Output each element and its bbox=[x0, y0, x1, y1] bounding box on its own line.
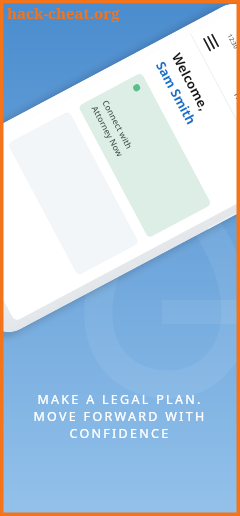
staticText: 12:30 bbox=[225, 33, 240, 51]
button[interactable]: Menu bbox=[198, 30, 223, 54]
staticText: CONFIDENCE bbox=[69, 425, 171, 442]
button[interactable] bbox=[7, 111, 139, 276]
staticText: Home bbox=[232, 90, 240, 117]
staticText: Connect with bbox=[99, 98, 135, 151]
staticText: hack-cheat.org bbox=[7, 3, 120, 23]
staticText: Sam Smith bbox=[152, 58, 200, 127]
staticText: Attorney Now bbox=[89, 104, 126, 160]
staticText: MAKE A LEGAL PLAN. bbox=[37, 391, 203, 408]
staticText: MOVE FORWARD WITH bbox=[33, 408, 207, 425]
button[interactable]: App preview bbox=[0, 0, 240, 341]
button[interactable]: Connect with bbox=[78, 72, 212, 238]
staticText: Welcome, bbox=[168, 50, 213, 114]
